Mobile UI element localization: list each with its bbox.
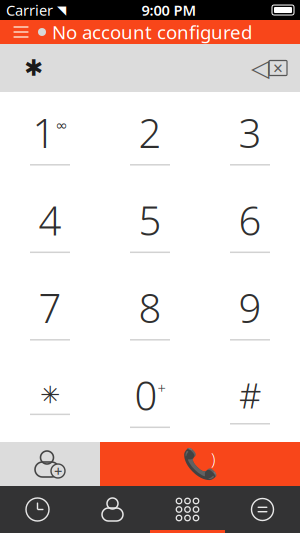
button[interactable]: 7 (0, 267, 100, 354)
staticText: # (239, 372, 261, 418)
button[interactable]: Recents (0, 486, 75, 533)
staticText: Carrier (6, 0, 53, 20)
button[interactable]: Messages (225, 486, 300, 533)
staticText: ∞ (55, 117, 67, 134)
button[interactable]: 9 (200, 267, 300, 354)
staticText: 4 (38, 193, 61, 246)
button[interactable]: 2 (100, 92, 200, 179)
button[interactable]: Backspace (246, 53, 292, 83)
button[interactable]: Menu (4, 20, 38, 44)
staticText: 8 (138, 281, 161, 334)
staticText: ✳ (40, 381, 60, 409)
staticText: + (54, 461, 62, 481)
staticText: 📞 (181, 447, 218, 481)
button[interactable]: Call (100, 442, 300, 486)
button[interactable]: ✳ (0, 354, 100, 442)
staticText: 9:00 PM (141, 0, 196, 20)
button[interactable]: 0 (100, 354, 200, 442)
button[interactable]: Add contact (0, 442, 100, 486)
button[interactable]: 6 (200, 179, 300, 267)
staticText: × (273, 56, 283, 79)
button[interactable]: 3 (200, 92, 300, 179)
button[interactable]: # (200, 354, 300, 442)
button[interactable]: 8 (100, 267, 200, 354)
staticText: ✱ (24, 55, 43, 81)
staticText: 5 (138, 193, 161, 246)
staticText: No account configured (52, 20, 252, 44)
button[interactable]: Contacts (75, 486, 150, 533)
staticText: + (157, 378, 165, 398)
staticText: 2 (138, 106, 161, 159)
staticText: 0 (134, 368, 157, 421)
staticText: 9 (238, 281, 261, 334)
button[interactable]: 1 (0, 92, 100, 179)
staticText: ◥ (57, 3, 66, 17)
staticText: ◁ (251, 54, 269, 82)
staticText: ) (211, 448, 215, 470)
staticText: 1 (32, 106, 55, 159)
button[interactable]: 5 (100, 179, 200, 267)
button[interactable]: Keypad (150, 486, 225, 533)
staticText: 3 (238, 106, 261, 159)
staticText: 6 (238, 193, 261, 246)
button[interactable]: 4 (0, 179, 100, 267)
staticText: 7 (38, 281, 61, 334)
